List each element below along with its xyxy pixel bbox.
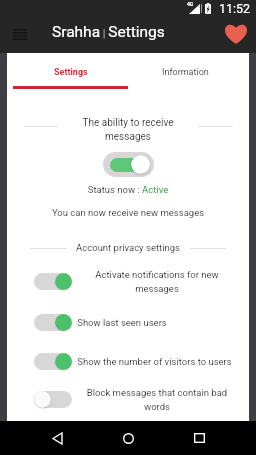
- button[interactable]: Block messages that contain bad words: [7, 380, 249, 418]
- staticText: Show last seen users: [77, 317, 167, 328]
- button[interactable]: Show the number of visitors to users: [7, 342, 249, 380]
- staticText: 11:52: [219, 1, 251, 16]
- button[interactable]: Settings: [13, 53, 128, 89]
- button[interactable]: Activate notifications for new messages: [7, 259, 249, 303]
- staticText: Srahha | Settings: [52, 23, 165, 41]
- staticText: Account privacy settings: [7, 242, 249, 253]
- button[interactable]: Show last seen users: [7, 303, 249, 342]
- staticText: The ability to receive messages: [68, 117, 188, 142]
- staticText: Information: [162, 67, 209, 78]
- staticText: Activate notifications for new messages: [77, 269, 237, 294]
- button[interactable]: Information: [128, 53, 243, 89]
- staticText: Show the number of visitors to users: [77, 356, 232, 367]
- staticText: Status now : Active: [7, 184, 249, 195]
- staticText: You can now receive new messages: [7, 207, 249, 218]
- staticText: Settings: [54, 67, 88, 78]
- button[interactable]: Receive messages toggle: [103, 152, 154, 177]
- button[interactable]: Favorites: [222, 20, 250, 48]
- button[interactable]: Recent apps: [177, 421, 221, 455]
- button[interactable]: Home: [106, 421, 150, 455]
- staticText: 4G: [187, 1, 194, 7]
- button[interactable]: Open navigation menu: [6, 20, 34, 48]
- staticText: Block messages that contain bad words: [77, 387, 237, 412]
- button[interactable]: Back: [35, 421, 79, 455]
